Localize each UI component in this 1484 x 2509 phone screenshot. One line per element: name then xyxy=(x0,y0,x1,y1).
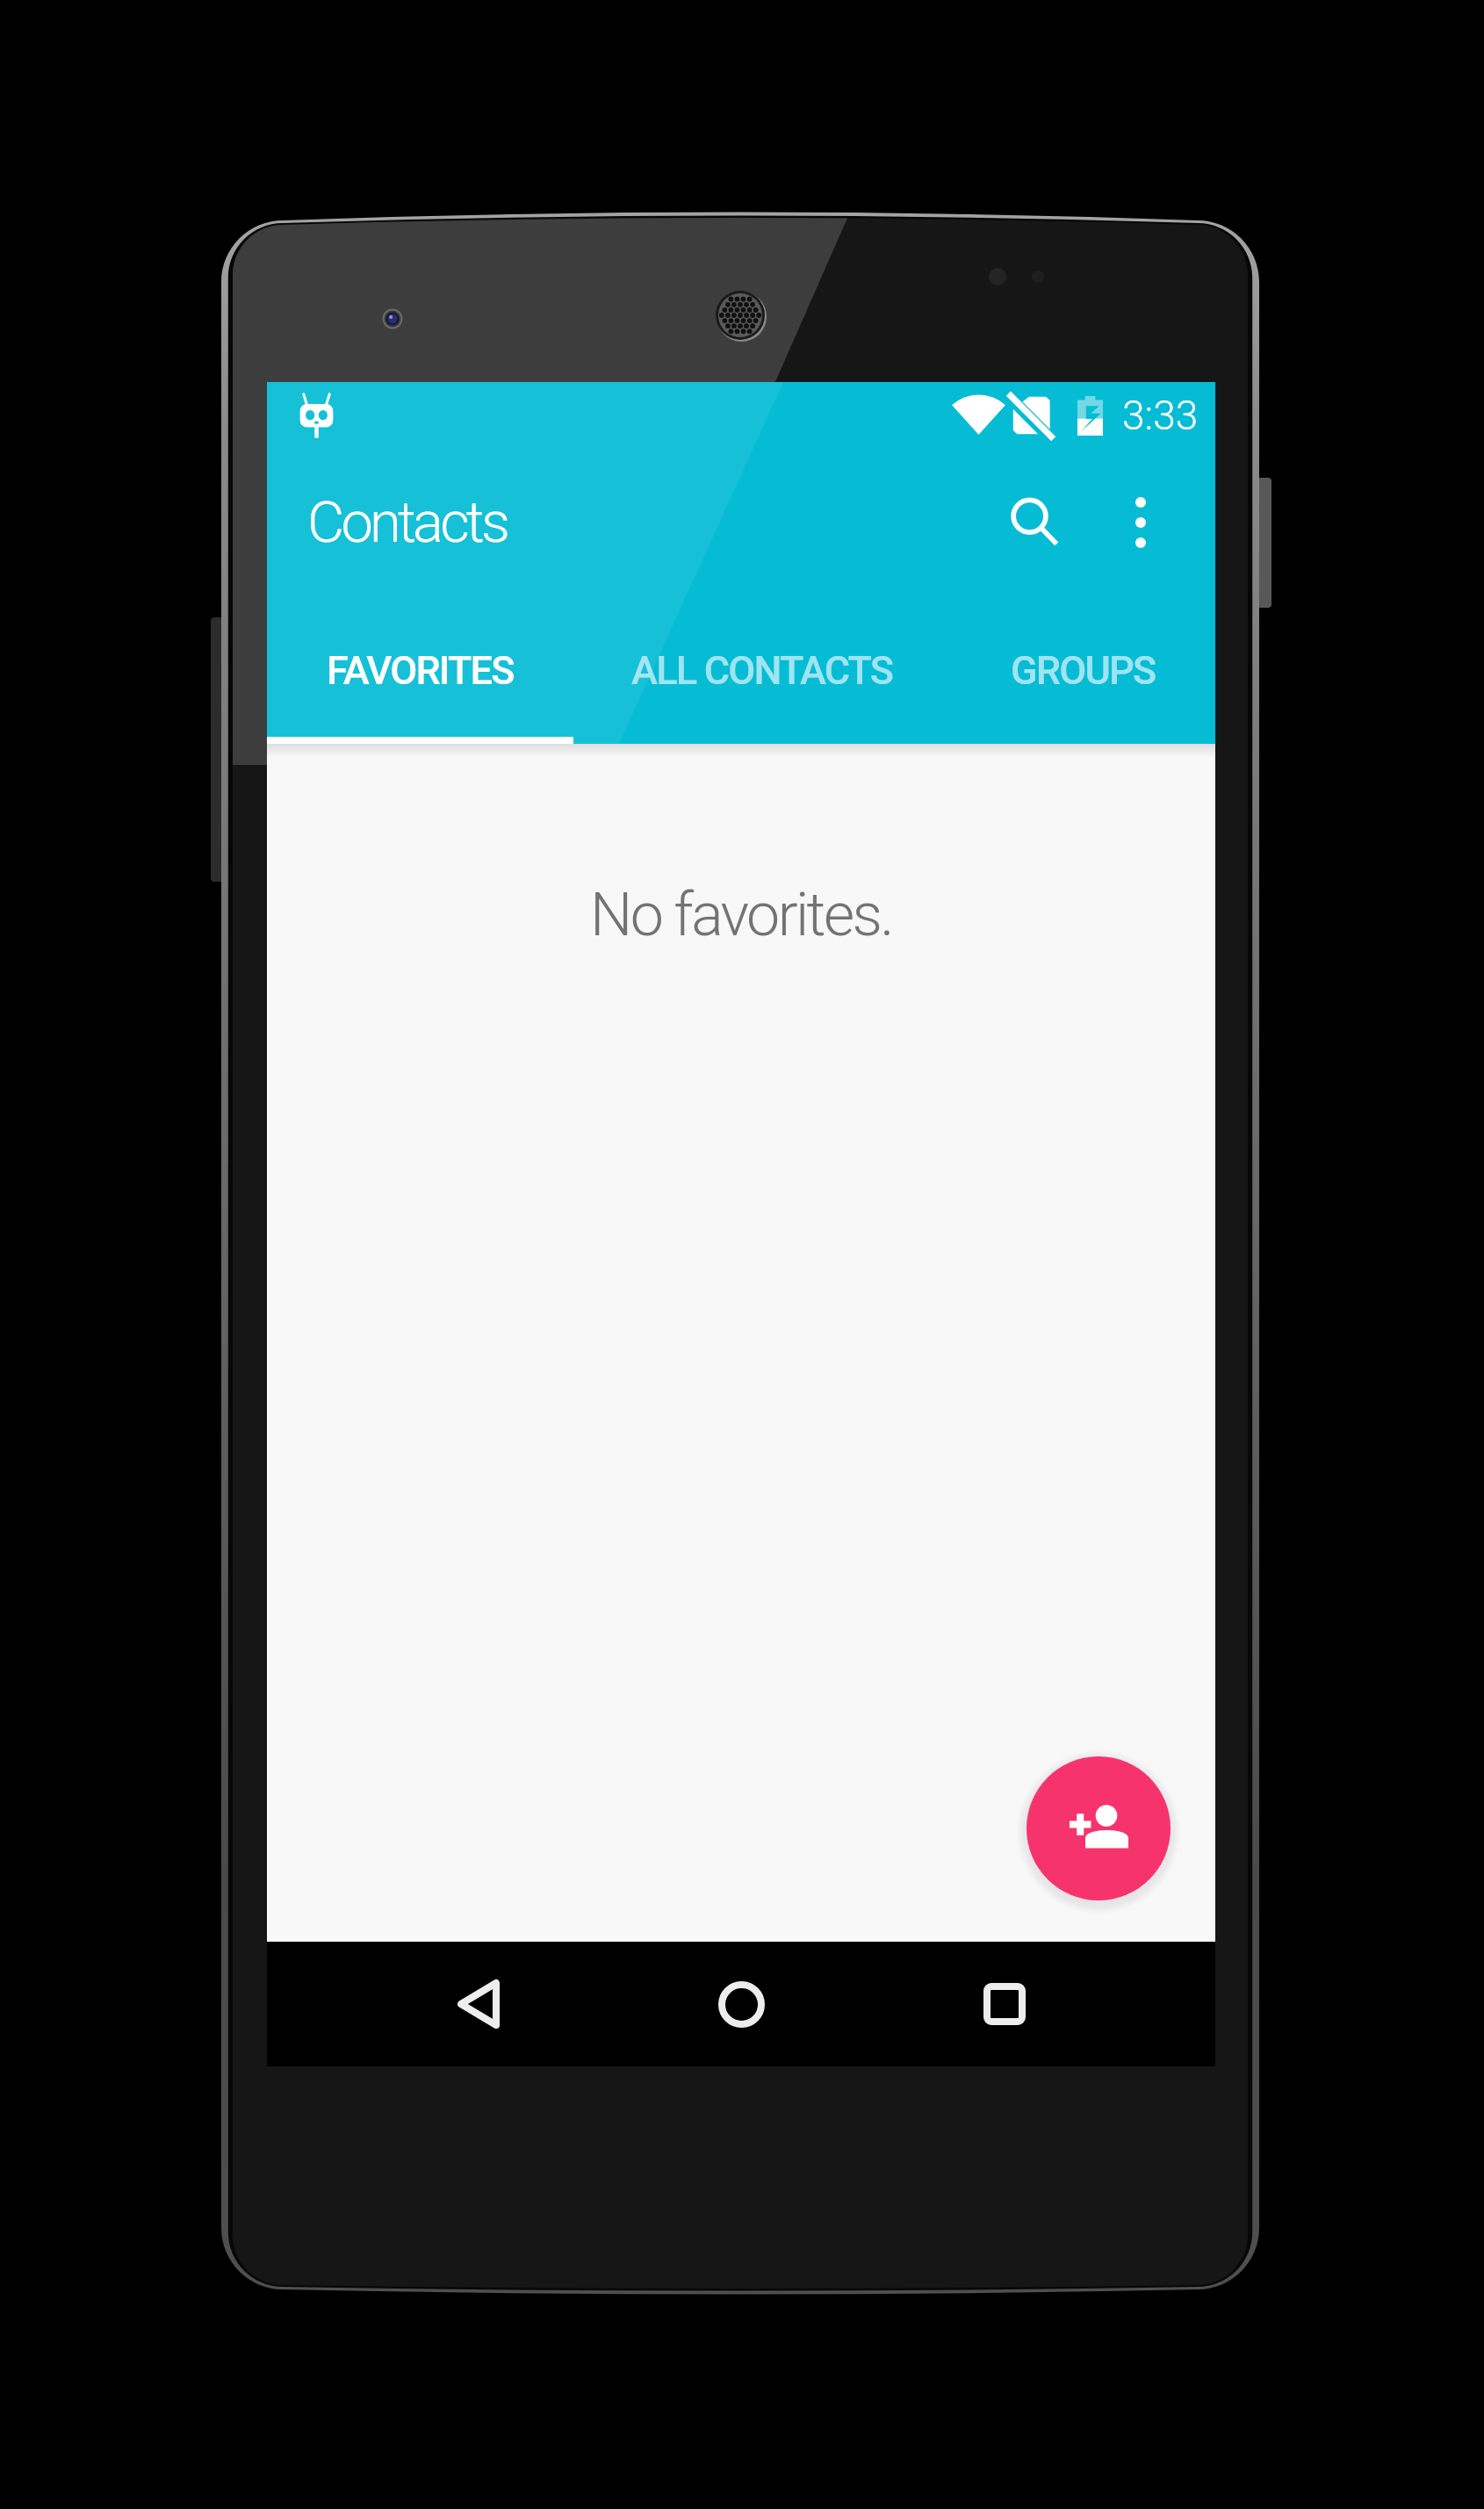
button[interactable]: Recents xyxy=(930,1942,1079,2066)
button[interactable]: FAVORITES xyxy=(267,597,573,744)
button[interactable]: Add contact xyxy=(1027,1756,1171,1900)
staticText: Contacts xyxy=(307,489,508,556)
button[interactable]: More options xyxy=(1088,470,1193,575)
button[interactable]: Search xyxy=(983,470,1088,575)
staticText: 3:33 xyxy=(1122,392,1199,439)
staticText: GROUPS xyxy=(1011,647,1156,694)
button[interactable]: Back xyxy=(403,1942,552,2066)
staticText: ALL CONTACTS xyxy=(631,647,893,694)
staticText: FAVORITES xyxy=(327,647,514,694)
staticText: No favorites. xyxy=(590,880,892,950)
button[interactable]: Home xyxy=(666,1942,816,2066)
button[interactable]: GROUPS xyxy=(950,597,1215,744)
button[interactable]: ALL CONTACTS xyxy=(573,597,950,744)
